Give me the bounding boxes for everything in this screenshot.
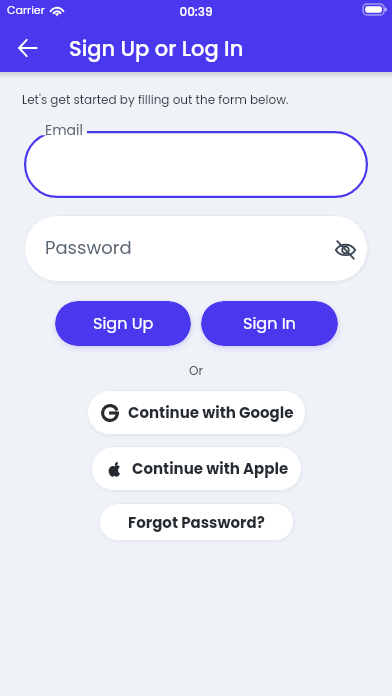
staticText: Sign Up (93, 312, 154, 334)
staticText: Let's get started by filling out the for… (22, 91, 289, 108)
button[interactable]: Back (0, 24, 54, 72)
button[interactable]: Password (24, 215, 368, 282)
button[interactable]: Sign Up (55, 301, 191, 346)
button[interactable]: Continue with Google (87, 390, 306, 435)
staticText: Carrier (7, 2, 45, 17)
button[interactable]: Forgot Password? (99, 503, 294, 541)
button[interactable]: Show password (332, 236, 358, 262)
staticText: Password (45, 235, 132, 260)
button[interactable]: Sign In (201, 301, 338, 346)
staticText: Continue with Apple (132, 458, 289, 479)
staticText: Continue with Google (128, 402, 294, 423)
staticText: Email (45, 120, 83, 140)
staticText: 00:39 (0, 3, 392, 20)
button[interactable]: Continue with Apple (91, 446, 302, 491)
staticText: Forgot Password? (128, 512, 265, 533)
staticText: Or (0, 362, 392, 379)
staticText: Sign In (243, 312, 296, 334)
staticText: Sign Up or Log In (69, 34, 244, 63)
